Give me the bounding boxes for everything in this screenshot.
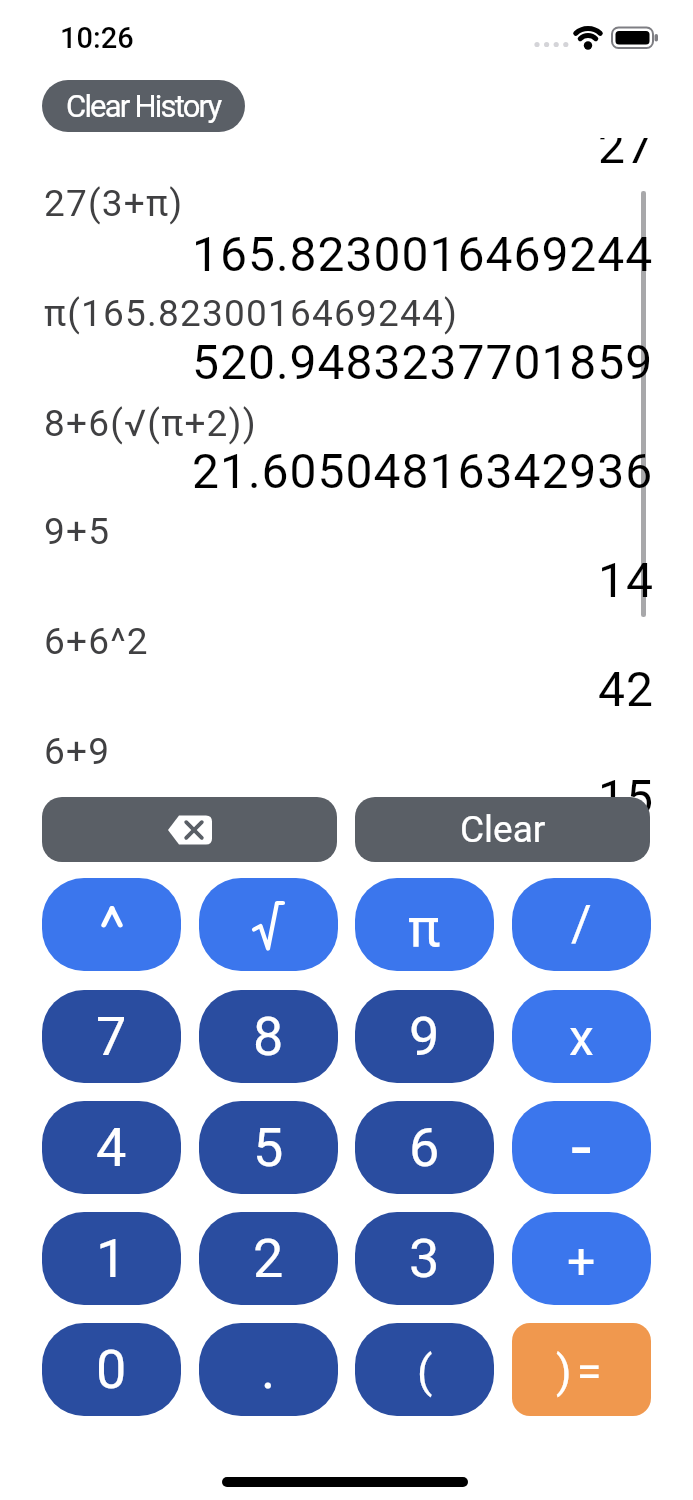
button[interactable]: )= (512, 1323, 651, 1416)
staticText: π(165.8230016469244) (44, 292, 459, 335)
button[interactable]: 8 (199, 990, 338, 1083)
button[interactable]: / (512, 878, 651, 971)
button[interactable] (42, 878, 181, 971)
staticText: x (569, 1009, 594, 1068)
button[interactable]: x (512, 990, 651, 1083)
staticText: 9 (409, 1005, 440, 1068)
staticText: )= (556, 1345, 607, 1398)
staticText: 0 (96, 1338, 127, 1401)
staticText: Clear History (66, 88, 221, 124)
button[interactable] (199, 878, 338, 971)
button[interactable]: ( (355, 1323, 494, 1416)
staticText: 9+5 (44, 510, 111, 553)
staticText: 6+9 (44, 730, 111, 773)
staticText: 165.8230016469244 (192, 226, 654, 282)
button[interactable]: 2 (199, 1212, 338, 1305)
staticText: 42 (598, 661, 654, 717)
staticText: 15 (598, 769, 654, 825)
staticText: 520.9483237701859 (192, 334, 654, 390)
button[interactable]: 9 (355, 990, 494, 1083)
button[interactable]: - (512, 1101, 651, 1194)
staticText: π (408, 896, 441, 959)
staticText: / (571, 895, 592, 954)
button[interactable] (42, 797, 337, 862)
staticText: - (571, 1104, 592, 1191)
staticText: + (567, 1233, 596, 1292)
button[interactable]: 6 (355, 1101, 494, 1194)
button[interactable]: 4 (42, 1101, 181, 1194)
button[interactable]: 1 (42, 1212, 181, 1305)
staticText: 1 (96, 1227, 127, 1290)
button[interactable]: π (355, 878, 494, 971)
button[interactable]: Clear (355, 797, 650, 862)
staticText: Clear (460, 808, 546, 851)
staticText: 6+6^2 (44, 620, 149, 663)
staticText: . (261, 1338, 276, 1401)
button[interactable]: + (512, 1212, 651, 1305)
staticText: 27(3+π) (44, 182, 184, 225)
staticText: 3 (409, 1227, 440, 1290)
staticText: 6 (409, 1116, 440, 1179)
staticText: 5 (253, 1116, 284, 1179)
button[interactable]: 3 (355, 1212, 494, 1305)
button[interactable]: Clear History (42, 80, 245, 132)
staticText: 10:26 (60, 21, 134, 55)
button[interactable]: 7 (42, 990, 181, 1083)
staticText: ( (417, 1345, 433, 1398)
staticText: 4 (96, 1116, 127, 1179)
staticText: 27 (598, 118, 654, 174)
button[interactable]: 0 (42, 1323, 181, 1416)
button[interactable]: . (199, 1323, 338, 1416)
staticText: 8 (253, 1005, 284, 1068)
staticText: 21.60504816342936 (192, 443, 654, 499)
staticText: 2 (253, 1227, 284, 1290)
button[interactable]: 5 (199, 1101, 338, 1194)
staticText: 7 (96, 1005, 127, 1068)
staticText: 8+6(√(π+2)) (44, 402, 257, 445)
staticText: 14 (598, 552, 654, 608)
